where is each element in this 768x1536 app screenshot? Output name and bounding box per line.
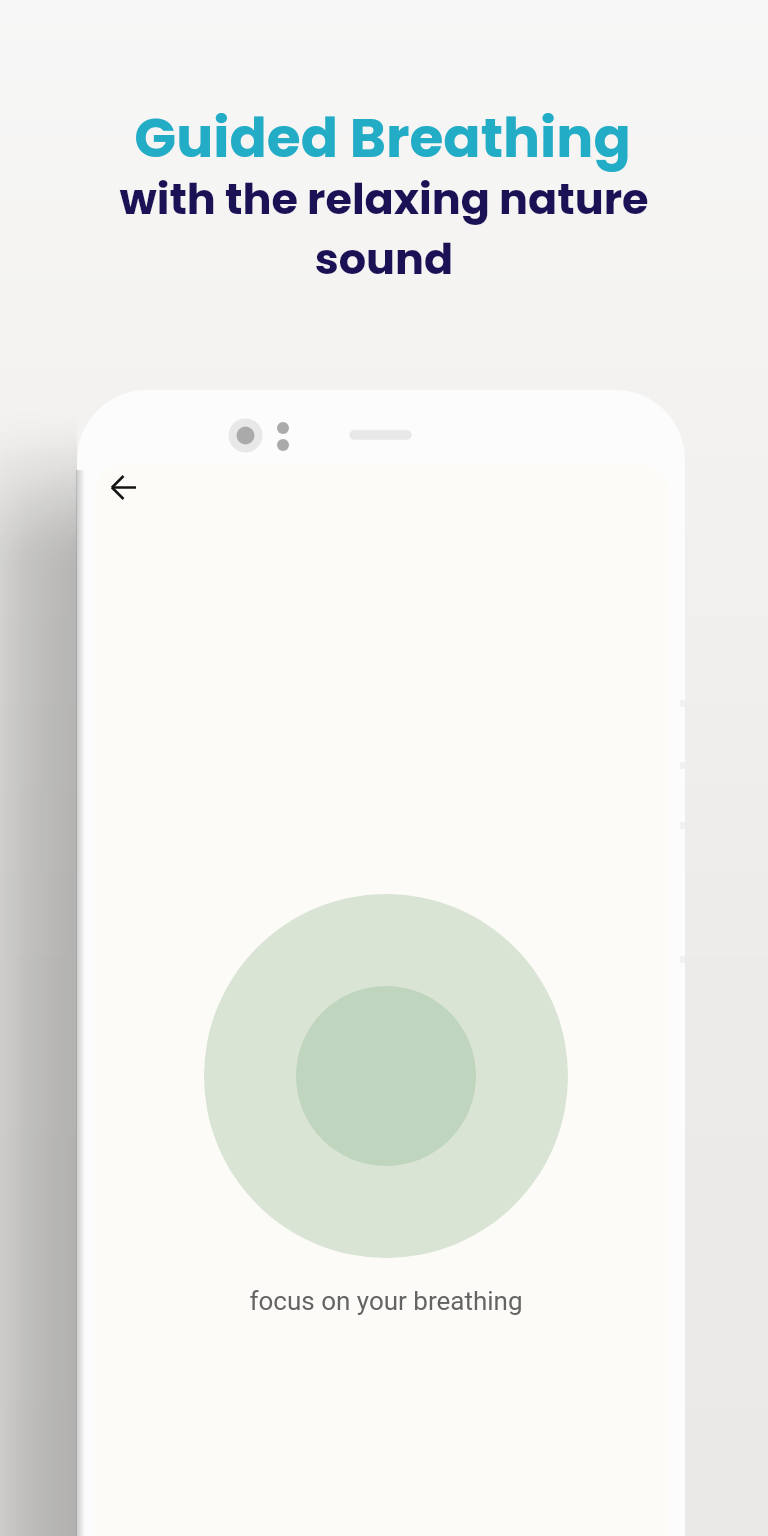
staticText: with the relaxing nature sound [0,169,768,289]
button[interactable]: Back [96,464,150,514]
staticText: focus on your breathing [98,1286,670,1316]
button[interactable]: Breathing animation [204,894,568,1258]
staticText: Guided Breathing [134,99,631,176]
